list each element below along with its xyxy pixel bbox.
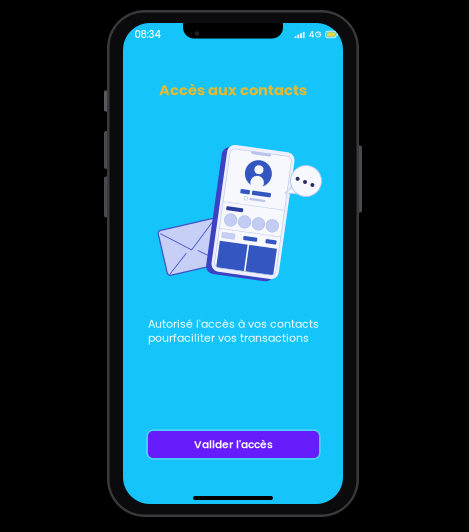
staticText: Accès aux contacts <box>159 80 307 100</box>
button[interactable]: Valider l'accès <box>148 431 319 458</box>
staticText: 4G <box>309 28 322 40</box>
staticText: Valider l'accès <box>194 437 273 452</box>
staticText: 08:34 <box>134 27 160 41</box>
staticText: pourfaciliter vos transactions <box>148 330 309 346</box>
staticText: Autorisé l'accès à vos contacts <box>148 316 319 332</box>
